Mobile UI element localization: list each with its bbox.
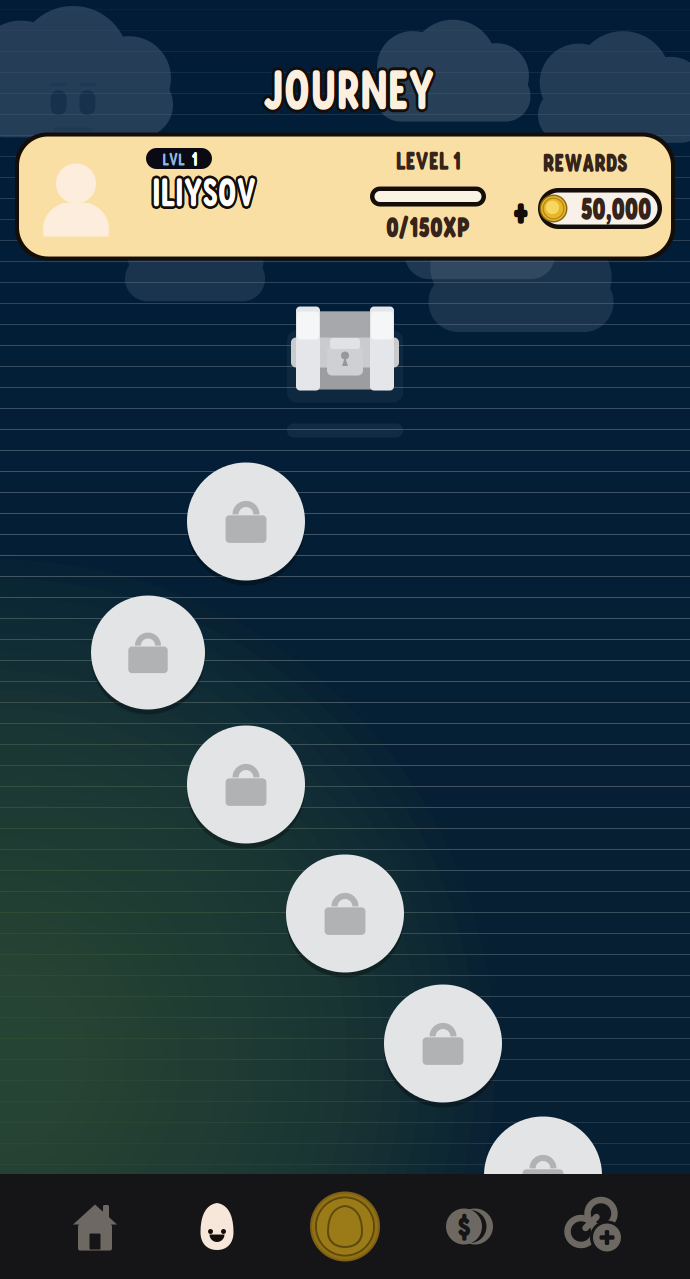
button[interactable]	[286, 854, 404, 972]
staticText: JOURNEY	[243, 57, 450, 125]
staticText: LEVEL 1	[389, 145, 467, 176]
button[interactable]	[91, 595, 205, 709]
button[interactable]: Invite friends	[535, 1174, 655, 1279]
staticText: ILIYSOV	[141, 167, 266, 216]
button[interactable]	[384, 984, 502, 1102]
staticText: JOURNEY	[243, 52, 450, 120]
staticText: REWARDS	[534, 147, 636, 178]
staticText: ILIYSOV	[143, 165, 268, 214]
staticText: JOURNEY	[245, 52, 452, 119]
staticText: ILIYSOV	[141, 170, 266, 218]
button[interactable]: Coins	[285, 1174, 405, 1279]
staticText: JOURNEY	[242, 55, 449, 122]
button[interactable]: My pet	[157, 1174, 277, 1279]
staticText: ILIYSOV	[144, 167, 269, 216]
button[interactable]	[187, 725, 305, 843]
staticText: JOURNEY	[248, 55, 455, 122]
staticText: LVL	[160, 147, 187, 170]
staticText: ILIYSOV	[139, 169, 264, 218]
staticText: ILIYSOV	[139, 167, 264, 216]
button[interactable]: Home	[35, 1174, 155, 1279]
staticText: ILIYSOV	[139, 165, 264, 214]
staticText: ILIYSOV	[143, 169, 268, 218]
staticText: ILIYSOV	[141, 164, 266, 213]
staticText: 1	[191, 146, 198, 171]
staticText: 0/150XP	[377, 209, 478, 244]
staticText: JOURNEY	[245, 58, 452, 125]
staticText: $	[457, 1205, 470, 1246]
staticText: JOURNEY	[248, 57, 455, 125]
button[interactable]: Earn	[407, 1174, 527, 1279]
staticText: JOURNEY	[245, 55, 452, 122]
staticText: JOURNEY	[248, 52, 455, 120]
staticText: 50,000	[573, 190, 658, 227]
button[interactable]	[484, 1116, 602, 1234]
button[interactable]	[187, 462, 305, 580]
staticText: +	[511, 181, 530, 236]
